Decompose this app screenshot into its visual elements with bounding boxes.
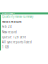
staticText: Queue 128 sent [2, 35, 26, 39]
staticText: Notes Feature [2, 20, 22, 23]
staticText: All sync reports listed [2, 40, 32, 44]
staticText: Growth summary [2, 12, 15, 14]
button[interactable]: Growth summary [0, 12, 48, 14]
staticText: Quarterly review summary [2, 15, 33, 18]
staticText: Feb 24 [2, 25, 12, 28]
staticText: 1 GB [2, 45, 9, 49]
staticText: New record [2, 30, 17, 34]
